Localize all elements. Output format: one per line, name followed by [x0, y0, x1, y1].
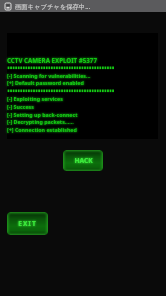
- staticText: [-] Scanning for vulnerabilities...: [7, 72, 91, 79]
- staticText: [-] Success: [7, 103, 34, 110]
- staticText: [-] Scanning for vulnerabilities...: [7, 72, 91, 79]
- staticText: [+] Default password enabled: [7, 79, 84, 86]
- staticText: [-] Setting up back-connect: [7, 111, 78, 118]
- staticText: [-] Decrypting packets......: [7, 118, 74, 125]
- staticText: [+] Default password enabled: [7, 79, 84, 86]
- staticText: [-] Exploiting services: [7, 95, 63, 102]
- button[interactable]: EXIT: [7, 212, 48, 235]
- staticText: CCTV CAMERA EXPLOIT #5377: [7, 56, 97, 64]
- staticText: EXIT: [18, 219, 37, 228]
- staticText: [-] Exploiting services: [7, 95, 63, 102]
- staticText: HACK: [74, 156, 93, 165]
- staticText: 画面キャプチャを保存中...: [15, 2, 91, 11]
- staticText: EXIT: [18, 219, 37, 228]
- staticText: HACK: [74, 156, 93, 165]
- staticText: CCTV CAMERA EXPLOIT #5377: [7, 56, 97, 64]
- button[interactable]: HACK: [63, 150, 103, 171]
- staticText: [-] Success: [7, 103, 34, 110]
- staticText: [-] Decrypting packets......: [7, 118, 74, 125]
- staticText: [+] Connection established: [7, 126, 77, 133]
- staticText: [-] Setting up back-connect: [7, 111, 78, 118]
- other: Screenshot saved: [5, 3, 11, 10]
- staticText: [+] Connection established: [7, 126, 77, 133]
